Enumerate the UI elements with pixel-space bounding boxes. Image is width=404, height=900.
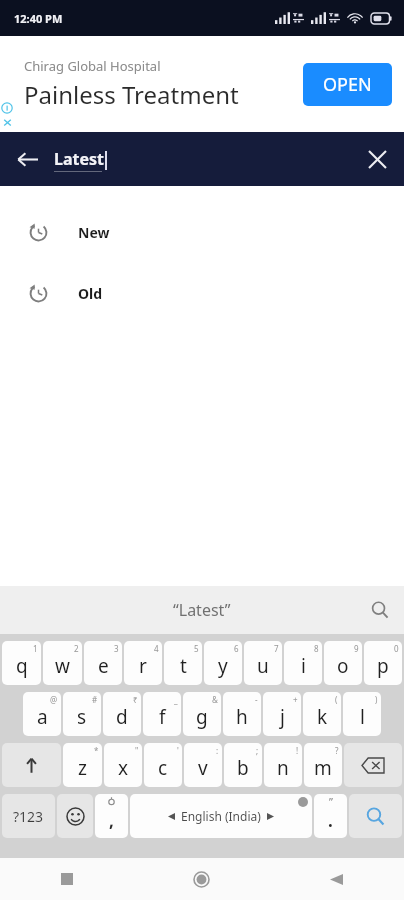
button[interactable]: ? <box>304 743 342 787</box>
staticText: n <box>277 755 289 781</box>
staticText: y <box>218 653 228 679</box>
button[interactable]: - <box>223 692 261 736</box>
button[interactable]: Space <box>130 794 312 838</box>
staticText: c <box>158 755 168 781</box>
button[interactable]: Recents <box>0 858 134 900</box>
button[interactable]: ! <box>264 743 302 787</box>
staticText: t <box>180 653 187 679</box>
staticText: : <box>216 745 219 756</box>
staticText: 7 <box>274 643 279 654</box>
button[interactable]: # <box>63 692 101 736</box>
staticText: 4 <box>154 643 159 654</box>
staticText: q <box>16 653 28 679</box>
staticText: ? <box>335 745 339 756</box>
button[interactable]: ' <box>144 743 182 787</box>
button[interactable]: New <box>0 202 404 263</box>
staticText: r <box>139 653 147 679</box>
staticText: “Latest” <box>173 599 231 621</box>
staticText: _ <box>174 694 178 705</box>
staticText: u <box>257 653 269 679</box>
button[interactable]: ; <box>224 743 262 787</box>
staticText: g <box>196 704 208 730</box>
button[interactable]: 3 <box>84 641 122 685</box>
button[interactable]: Home <box>134 858 269 900</box>
button[interactable]: ₹ <box>103 692 141 736</box>
staticText: 8 <box>314 643 319 654</box>
staticText: v <box>198 755 208 781</box>
staticText: f <box>159 704 166 730</box>
staticText: OPEN <box>323 72 372 97</box>
button[interactable]: Shift <box>2 743 61 787</box>
staticText: m <box>314 755 332 781</box>
staticText: 12:40 PM <box>14 11 63 26</box>
button[interactable]: OPEN <box>303 63 392 106</box>
button[interactable]: + <box>263 692 301 736</box>
staticText: Chirag Global Hospital <box>24 57 161 75</box>
staticText: @ <box>50 694 58 705</box>
staticText: k <box>317 704 328 730</box>
button[interactable]: Back <box>269 858 404 900</box>
staticText: ?123 <box>13 807 44 826</box>
staticText: English (India) <box>181 808 261 824</box>
staticText: x <box>118 755 129 781</box>
button[interactable]: 9 <box>324 641 362 685</box>
button[interactable]: 6 <box>204 641 242 685</box>
staticText: z <box>78 755 87 781</box>
staticText: 0 <box>394 643 399 654</box>
staticText: j <box>280 704 285 730</box>
staticText: ) <box>375 694 378 705</box>
button[interactable]: Period <box>314 794 347 838</box>
button[interactable]: Comma <box>95 794 128 838</box>
staticText: 2 <box>74 643 79 654</box>
staticText: h <box>236 704 248 730</box>
staticText: 6 <box>234 643 239 654</box>
staticText: a <box>37 704 48 730</box>
button[interactable]: 2 <box>43 641 82 685</box>
button[interactable]: Back <box>0 132 54 186</box>
button[interactable]: 4 <box>124 641 162 685</box>
staticText: 9 <box>354 643 359 654</box>
staticText: ' <box>177 745 179 756</box>
staticText: 5 <box>194 643 199 654</box>
staticText: - <box>255 694 258 705</box>
button[interactable]: 1 <box>2 641 41 685</box>
button[interactable]: ( <box>303 692 341 736</box>
staticText: ; <box>256 745 259 756</box>
staticText: + <box>293 694 298 705</box>
staticText: New <box>78 223 110 242</box>
button[interactable]: 0 <box>364 641 402 685</box>
button[interactable]: : <box>184 743 222 787</box>
staticText: , <box>109 809 114 832</box>
staticText: " <box>135 745 139 756</box>
button[interactable]: Clear <box>350 132 404 186</box>
button[interactable]: Search suggestion <box>356 586 404 634</box>
button[interactable]: Backspace <box>344 743 402 787</box>
button[interactable]: @ <box>23 692 61 736</box>
button[interactable]: 7 <box>244 641 282 685</box>
staticText: e <box>98 653 109 679</box>
button[interactable]: 5 <box>164 641 202 685</box>
staticText: Old <box>78 284 103 303</box>
staticText: d <box>116 704 128 730</box>
button[interactable]: 8 <box>284 641 322 685</box>
staticText: p <box>377 653 389 679</box>
staticText: & <box>212 694 218 705</box>
button[interactable]: Ad info <box>1 102 13 114</box>
staticText: # <box>92 694 98 705</box>
staticText: . <box>328 809 333 832</box>
button[interactable]: * <box>63 743 102 787</box>
button[interactable]: Old <box>0 263 404 324</box>
button[interactable]: " <box>104 743 142 787</box>
staticText: Latest <box>54 148 105 170</box>
button[interactable]: _ <box>143 692 181 736</box>
button[interactable]: Close ad <box>2 117 13 128</box>
staticText: l <box>360 704 365 730</box>
staticText: ( <box>335 694 338 705</box>
staticText: ” <box>329 794 333 809</box>
button[interactable]: ) <box>343 692 381 736</box>
button[interactable]: & <box>183 692 221 736</box>
button[interactable]: Search <box>349 794 402 838</box>
button[interactable]: ?123 <box>2 794 55 838</box>
staticText: ₹ <box>133 694 138 705</box>
button[interactable]: Emoji <box>57 794 93 838</box>
